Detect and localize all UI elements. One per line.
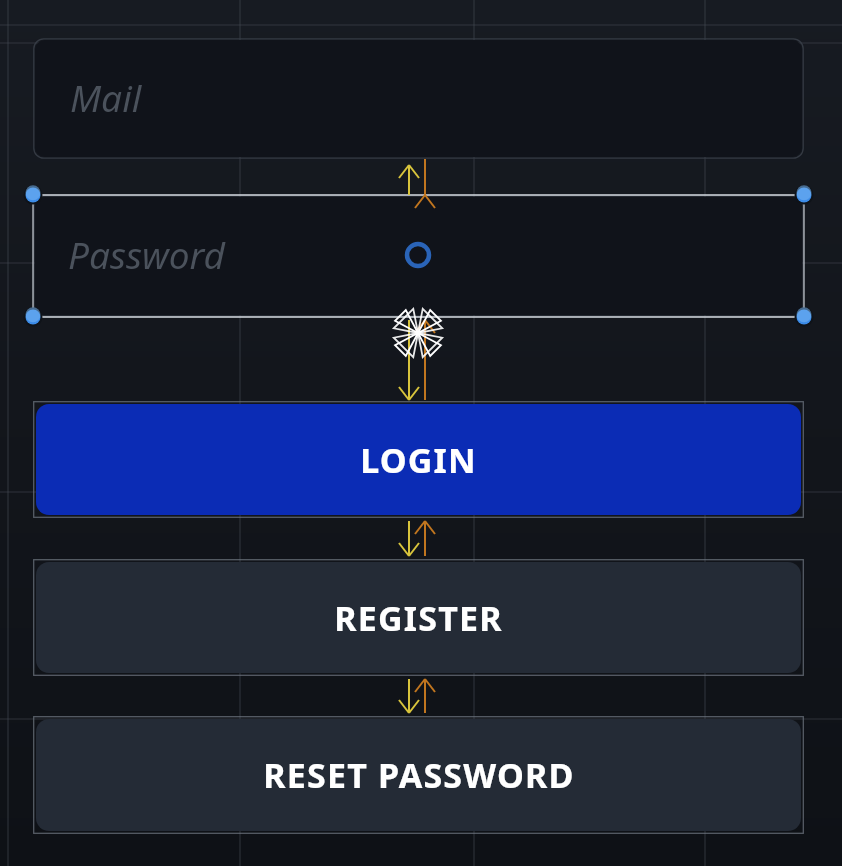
button[interactable]: Password	[33, 195, 804, 317]
button[interactable]: Mail	[33, 38, 804, 159]
staticText: RESET PASSWORD	[263, 752, 575, 798]
staticText: REGISTER	[334, 595, 503, 641]
button[interactable]: LOGIN	[33, 401, 804, 518]
button[interactable]: REGISTER	[33, 559, 804, 676]
staticText: LOGIN	[360, 437, 477, 483]
staticText: Mail	[70, 72, 142, 122]
button[interactable]: RESET PASSWORD	[33, 716, 804, 834]
staticText: Password	[68, 229, 225, 279]
